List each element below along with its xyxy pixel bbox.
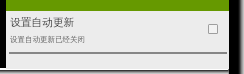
staticText: 设置自动更新 <box>10 16 75 29</box>
button[interactable]: 设置自动更新 <box>6 10 229 53</box>
staticText: 设置自动更新已经关闭 <box>10 35 85 44</box>
